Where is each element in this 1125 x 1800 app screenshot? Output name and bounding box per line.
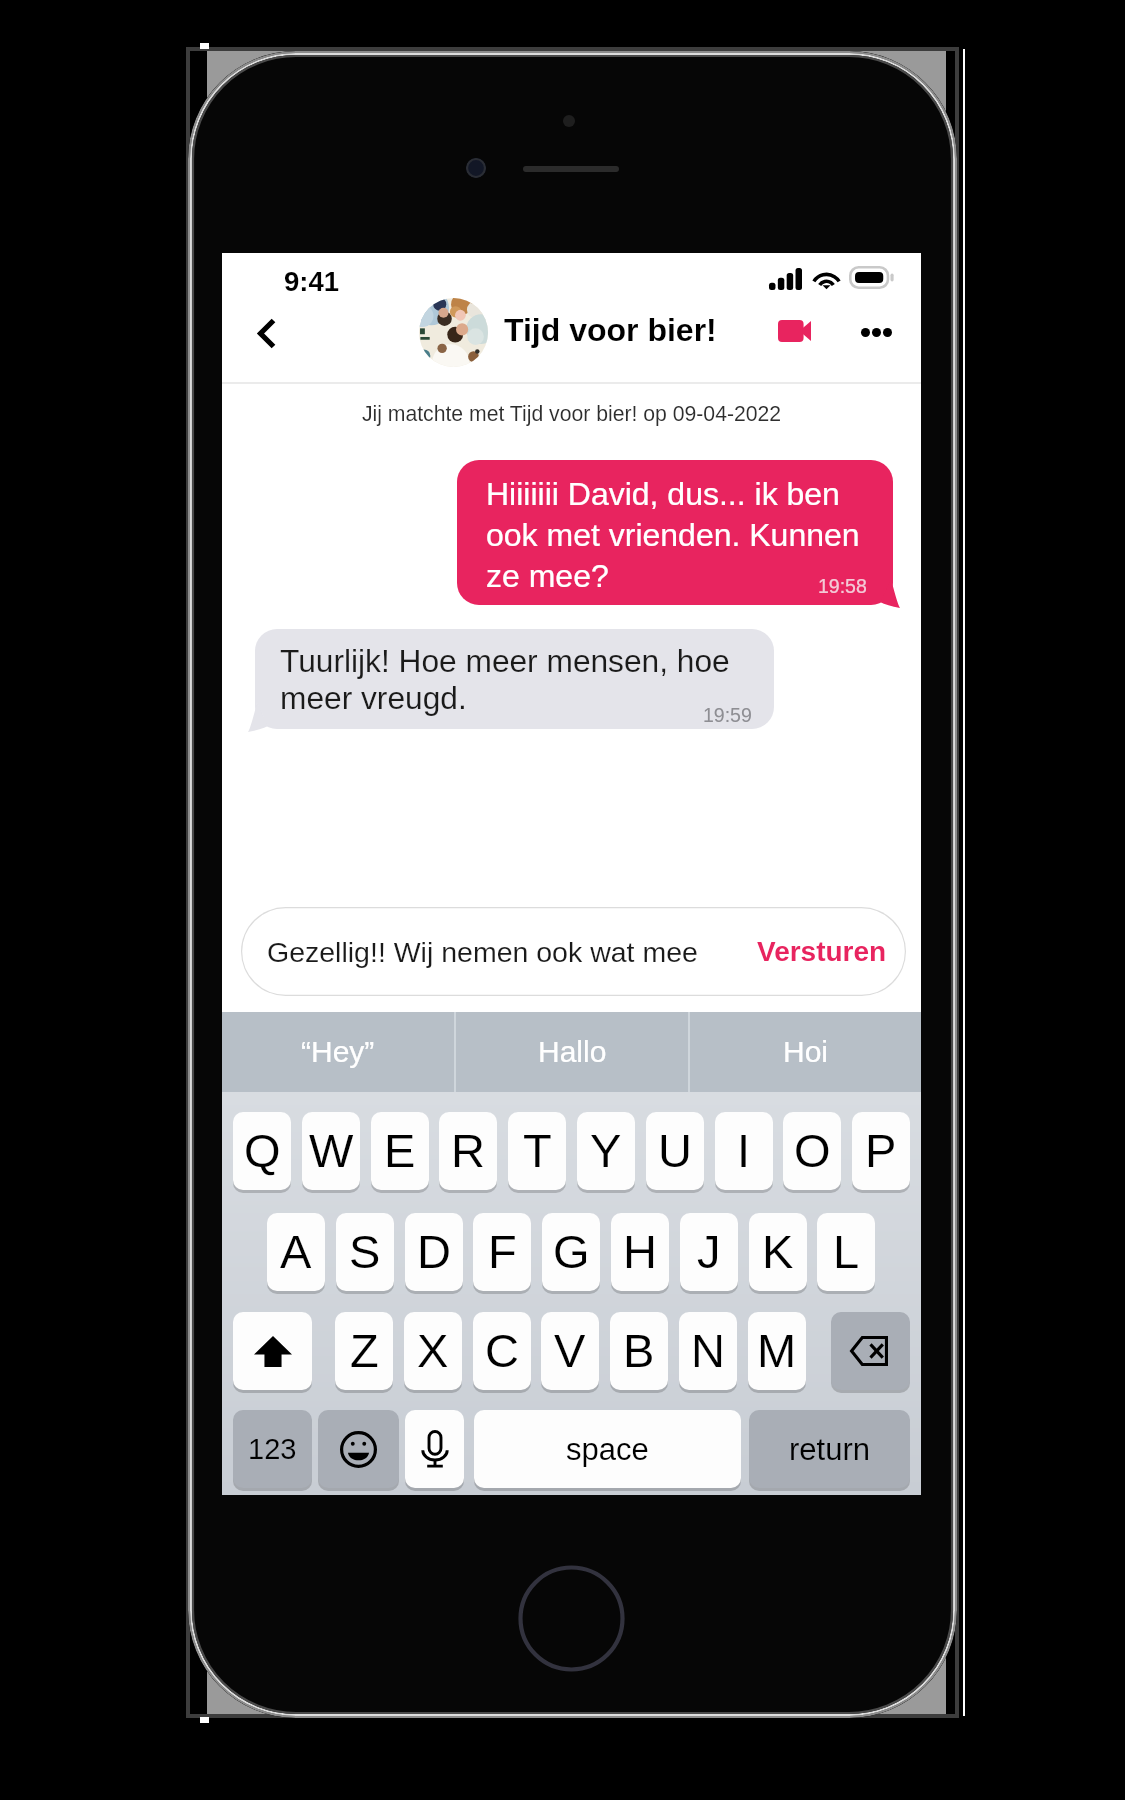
button[interactable]: More options	[842, 302, 910, 362]
staticText: K	[762, 1225, 794, 1278]
button[interactable]: T	[508, 1112, 566, 1190]
button[interactable]: Q	[233, 1112, 291, 1190]
button[interactable]: A	[267, 1213, 325, 1291]
staticText: Versturen	[757, 936, 887, 967]
button[interactable]: Numbers	[233, 1410, 312, 1488]
staticText: U	[658, 1124, 692, 1177]
staticText: Jij matchte met Tijd voor bier! op 09-04…	[222, 402, 921, 426]
staticText: 19:59	[703, 704, 752, 726]
button[interactable]: J	[680, 1213, 738, 1291]
button[interactable]: K	[749, 1213, 807, 1291]
staticText: Hallo	[538, 1035, 607, 1069]
button[interactable]: P	[852, 1112, 910, 1190]
staticText: Hiiiiiii David, dus... ik ben ook met vr…	[486, 476, 866, 594]
staticText: 123	[248, 1433, 297, 1465]
staticText: A	[280, 1225, 312, 1278]
staticText: Q	[244, 1124, 281, 1177]
staticText: J	[697, 1225, 721, 1278]
staticText: I	[737, 1124, 751, 1177]
staticText: Hoi	[783, 1035, 829, 1069]
staticText: Y	[590, 1124, 622, 1177]
staticText: 9:41	[284, 266, 340, 297]
staticText: V	[554, 1324, 586, 1377]
staticText: Z	[350, 1324, 379, 1377]
button[interactable]: L	[817, 1213, 875, 1291]
button[interactable]: Return	[749, 1410, 910, 1488]
staticText: Tuurlijk! Hoe meer mensen, hoe meer vreu…	[280, 643, 760, 715]
button[interactable]: R	[439, 1112, 497, 1190]
staticText: P	[865, 1124, 897, 1177]
staticText: C	[485, 1324, 519, 1377]
button[interactable]: S	[336, 1213, 394, 1291]
staticText: O	[794, 1124, 831, 1177]
button[interactable]: E	[371, 1112, 429, 1190]
staticText: Gezellig!! Wij nemen ook wat mee	[267, 936, 757, 968]
button[interactable]: Emoji	[318, 1410, 399, 1488]
staticText: F	[488, 1225, 517, 1278]
button[interactable]: G	[542, 1213, 600, 1291]
button[interactable]: F	[473, 1213, 531, 1291]
staticText: 19:58	[818, 575, 867, 597]
button[interactable]: Space	[474, 1410, 741, 1488]
staticText: E	[384, 1124, 416, 1177]
staticText: S	[349, 1225, 381, 1278]
button[interactable]: I	[715, 1112, 773, 1190]
button[interactable]: Hallo	[456, 1012, 688, 1092]
button[interactable]: U	[646, 1112, 704, 1190]
button[interactable]: Gezellig!! Wij nemen ook wat mee	[241, 907, 906, 996]
button[interactable]: W	[302, 1112, 360, 1190]
staticText: Tijd voor bier!	[504, 312, 717, 348]
staticText: H	[623, 1225, 657, 1278]
button[interactable]: C	[473, 1312, 531, 1390]
button[interactable]: Hiiiiiii David, dus... ik ben ook met vr…	[457, 460, 893, 605]
staticText: D	[417, 1225, 451, 1278]
staticText: “Hey”	[301, 1035, 375, 1069]
button[interactable]: Shift	[233, 1312, 312, 1390]
staticText: G	[553, 1225, 590, 1278]
staticText: N	[691, 1324, 725, 1377]
button[interactable]: Tuurlijk! Hoe meer mensen, hoe meer vreu…	[255, 629, 774, 729]
button[interactable]: Backspace	[831, 1312, 910, 1390]
button[interactable]: Video call	[758, 301, 830, 361]
button[interactable]: V	[541, 1312, 599, 1390]
button[interactable]: B	[610, 1312, 668, 1390]
staticText: B	[623, 1324, 655, 1377]
staticText: space	[566, 1432, 649, 1467]
staticText: L	[833, 1225, 860, 1278]
button[interactable]: Dictation	[405, 1410, 464, 1488]
staticText: T	[523, 1124, 552, 1177]
button[interactable]: M	[748, 1312, 806, 1390]
staticText: M	[757, 1324, 797, 1377]
button[interactable]: Z	[335, 1312, 393, 1390]
staticText: return	[789, 1432, 870, 1467]
staticText: X	[417, 1324, 449, 1377]
button[interactable]: Y	[577, 1112, 635, 1190]
button[interactable]: H	[611, 1213, 669, 1291]
button[interactable]: “Hey”	[222, 1012, 454, 1092]
staticText: R	[451, 1124, 485, 1177]
button[interactable]: X	[404, 1312, 462, 1390]
button[interactable]: D	[405, 1213, 463, 1291]
staticText: W	[309, 1124, 354, 1177]
button[interactable]: Back	[234, 300, 300, 366]
button[interactable]: Hoi	[690, 1012, 921, 1092]
button[interactable]: N	[679, 1312, 737, 1390]
button[interactable]: O	[783, 1112, 841, 1190]
